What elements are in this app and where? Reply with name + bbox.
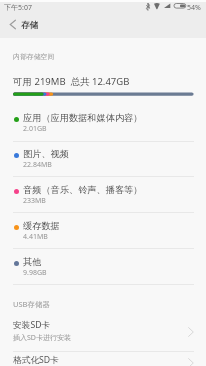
staticText: 22.84MB bbox=[23, 160, 52, 170]
staticText: 应用（应用数据和媒体内容） bbox=[23, 112, 143, 124]
staticText: 可用 219MB 总共 12.47GB bbox=[13, 75, 130, 88]
staticText: 54% bbox=[187, 3, 201, 13]
staticText: 安装SD卡 bbox=[13, 319, 51, 331]
staticText: 格式化SD卡 bbox=[13, 354, 59, 366]
button[interactable]: Back bbox=[1, 12, 25, 37]
staticText: 下午5:07 bbox=[4, 3, 32, 13]
staticText: 内部存储空间 bbox=[13, 52, 55, 61]
staticText: 4.41MB bbox=[23, 232, 48, 242]
button[interactable]: 音频（音乐、铃声、播客等） bbox=[0, 178, 206, 214]
staticText: 图片、视频 bbox=[23, 148, 69, 160]
staticText: 233MB bbox=[23, 196, 46, 206]
staticText: 插入SD卡进行安装 bbox=[13, 333, 71, 343]
staticText: 音频（音乐、铃声、播客等） bbox=[23, 184, 143, 196]
staticText: 缓存数据 bbox=[23, 220, 60, 232]
staticText: 存储 bbox=[21, 20, 39, 31]
staticText: 2.01GB bbox=[23, 124, 47, 134]
button[interactable]: 格式化SD卡 bbox=[0, 350, 206, 366]
button[interactable]: 应用（应用数据和媒体内容） bbox=[0, 106, 206, 142]
button[interactable]: 图片、视频 bbox=[0, 142, 206, 178]
button[interactable]: 其他 bbox=[0, 250, 206, 286]
button[interactable]: 安装SD卡 bbox=[0, 315, 206, 351]
staticText: USB存储器 bbox=[13, 299, 50, 309]
staticText: 其他 bbox=[23, 256, 42, 268]
staticText: 9.98GB bbox=[23, 268, 47, 278]
button[interactable]: 缓存数据 bbox=[0, 214, 206, 250]
